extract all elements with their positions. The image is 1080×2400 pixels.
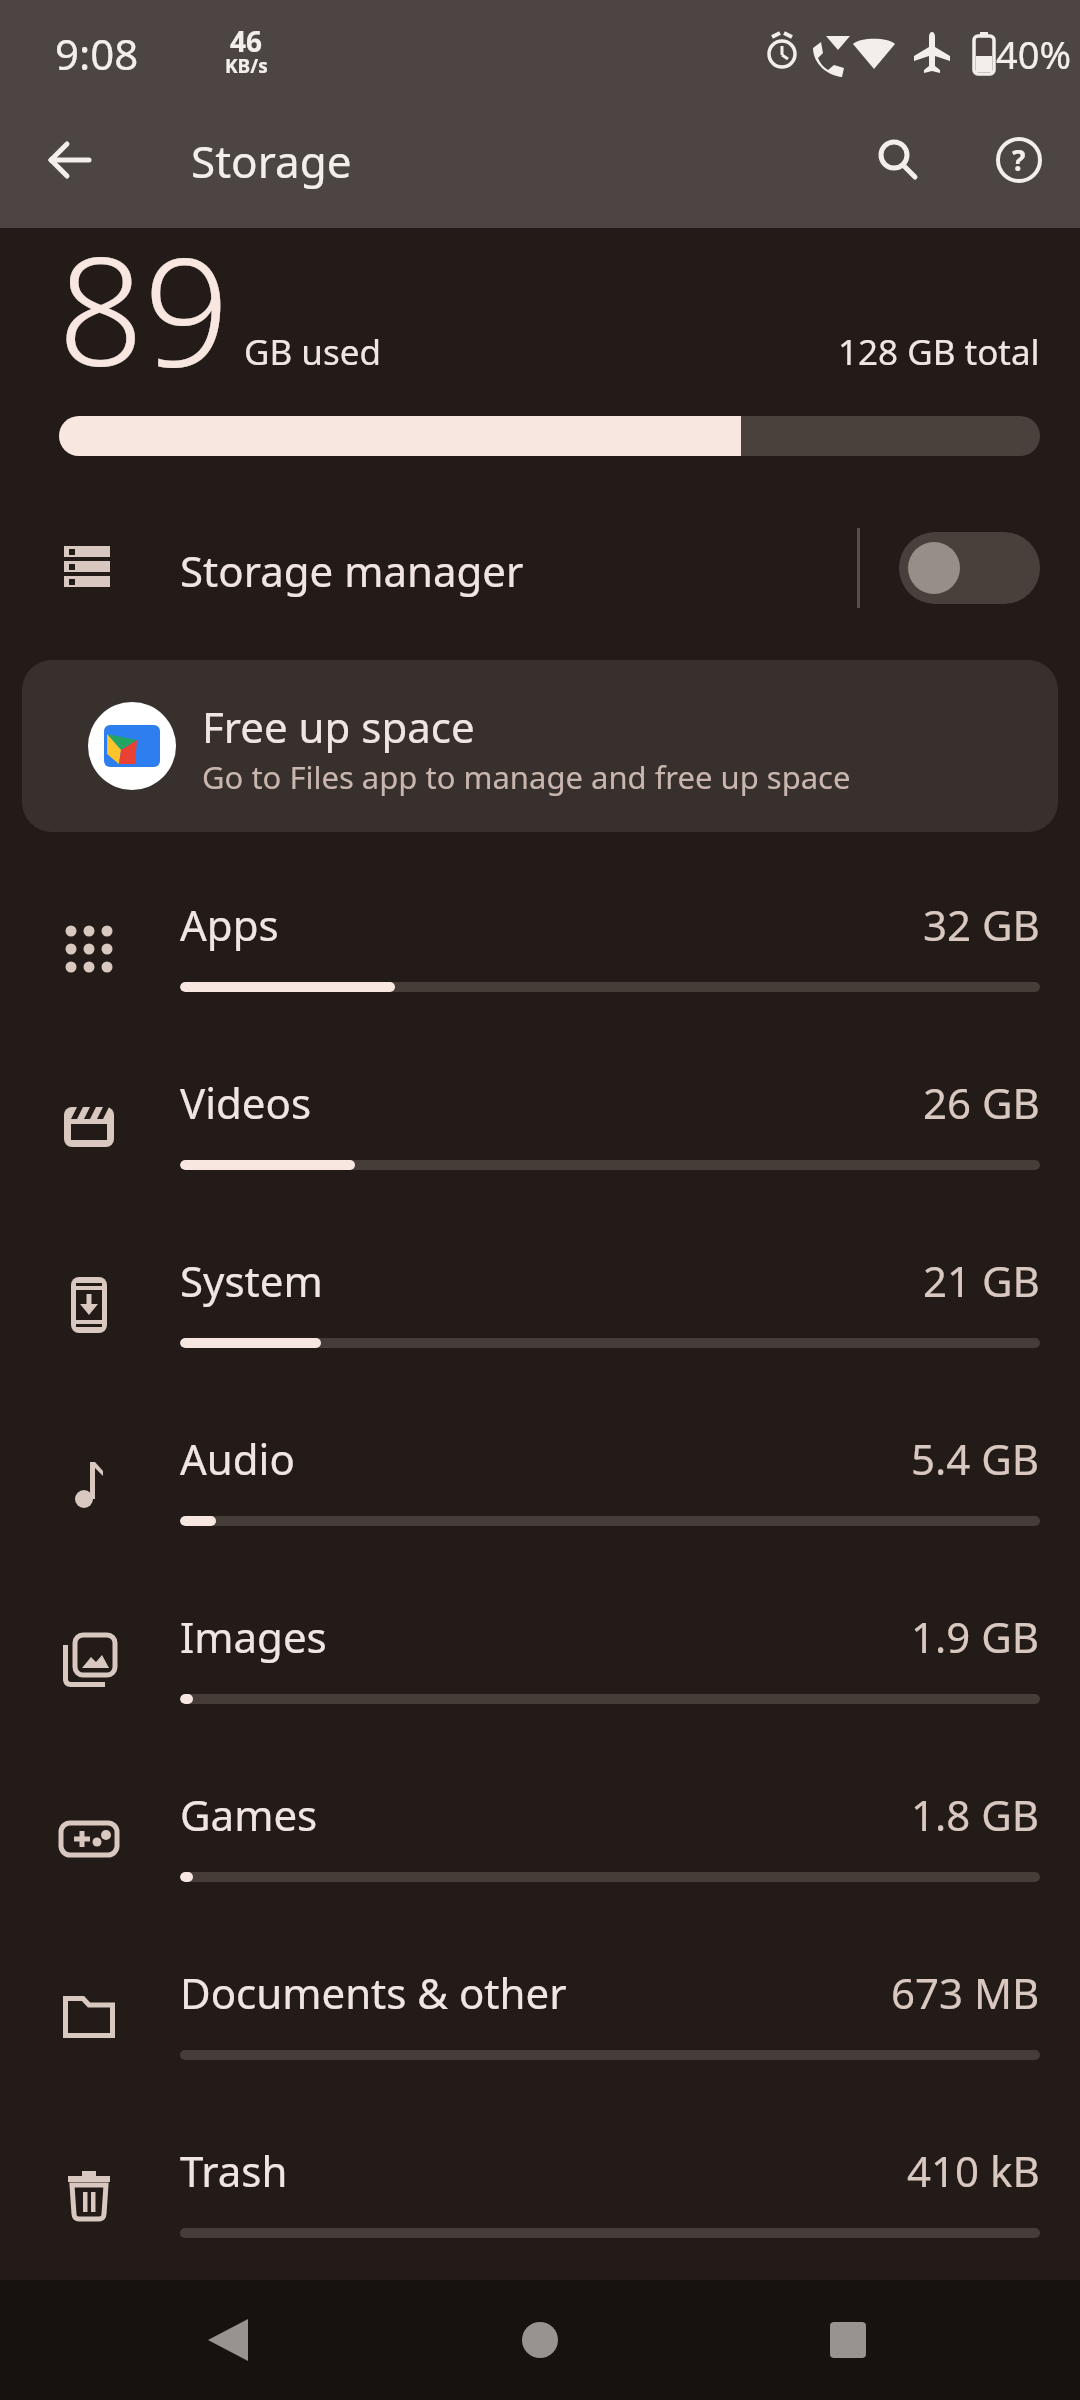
staticText: ? (1012, 141, 1026, 179)
staticText: 21 GB (923, 1252, 1040, 1309)
button[interactable]: Videos (0, 1038, 1080, 1216)
staticText: Trash (180, 2142, 288, 2199)
staticText: 40% (996, 28, 1072, 80)
staticText: 5.4 GB (911, 1430, 1040, 1487)
staticText: 46 (230, 22, 263, 60)
button[interactable]: Storage manager (0, 500, 1080, 636)
button[interactable]: Audio (0, 1394, 1080, 1572)
staticText: 128 GB total (838, 328, 1040, 376)
staticText: GB used (244, 328, 381, 376)
button[interactable]: ? (987, 128, 1051, 192)
button[interactable] (490, 2290, 590, 2390)
staticText: Apps (180, 896, 279, 953)
button[interactable] (866, 128, 930, 192)
staticText: Documents & other (180, 1964, 567, 2021)
button[interactable]: Documents & other (0, 1928, 1080, 2106)
button[interactable]: Apps (0, 860, 1080, 1038)
staticText: 89 (58, 206, 230, 410)
button[interactable]: System (0, 1216, 1080, 1394)
button[interactable]: Images (0, 1572, 1080, 1750)
staticText: 26 GB (923, 1074, 1040, 1131)
staticText: 410 kB (907, 2142, 1040, 2199)
staticText: Free up space (202, 698, 475, 755)
button[interactable]: Trash (0, 2106, 1080, 2284)
staticText: 1.9 GB (911, 1608, 1040, 1665)
staticText: KB/s (225, 53, 268, 79)
staticText: Audio (180, 1430, 295, 1487)
staticText: Videos (180, 1074, 312, 1131)
staticText: 9:08 (55, 25, 139, 82)
button[interactable] (38, 128, 102, 192)
staticText: 673 MB (891, 1964, 1040, 2021)
button[interactable] (899, 532, 1040, 604)
staticText: Go to Files app to manage and free up sp… (202, 756, 851, 798)
staticText: Storage (191, 131, 352, 191)
button[interactable] (178, 2290, 278, 2390)
staticText: 32 GB (923, 896, 1040, 953)
staticText: 1.8 GB (911, 1786, 1040, 1843)
staticText: Images (180, 1608, 327, 1665)
button[interactable]: Free up space (22, 660, 1058, 832)
staticText: System (180, 1252, 323, 1309)
staticText: Storage manager (180, 542, 524, 599)
staticText: Games (180, 1786, 318, 1843)
button[interactable] (798, 2290, 898, 2390)
button[interactable]: Games (0, 1750, 1080, 1928)
